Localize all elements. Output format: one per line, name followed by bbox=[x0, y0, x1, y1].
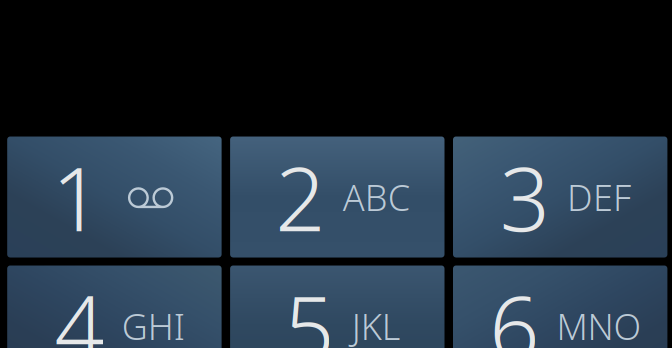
staticText: 1 bbox=[52, 139, 102, 255]
button[interactable]: 5 JKL bbox=[230, 265, 444, 348]
button[interactable]: 4 GHI bbox=[7, 265, 222, 348]
button[interactable]: 3 DEF bbox=[453, 136, 667, 257]
staticText: DEF bbox=[567, 173, 631, 221]
staticText: 3 bbox=[500, 139, 550, 255]
button[interactable]: 6 MNO bbox=[453, 265, 667, 348]
staticText: MNO bbox=[557, 302, 642, 348]
staticText: ABC bbox=[343, 173, 410, 221]
staticText: 5 bbox=[284, 268, 334, 348]
button[interactable]: 1 voicemail bbox=[7, 136, 222, 257]
staticText: GHI bbox=[122, 302, 185, 348]
staticText: JKL bbox=[352, 302, 401, 348]
staticText: 6 bbox=[489, 268, 539, 348]
staticText: 4 bbox=[54, 268, 104, 348]
button[interactable]: 2 ABC bbox=[230, 136, 444, 257]
staticText: 2 bbox=[275, 139, 325, 255]
